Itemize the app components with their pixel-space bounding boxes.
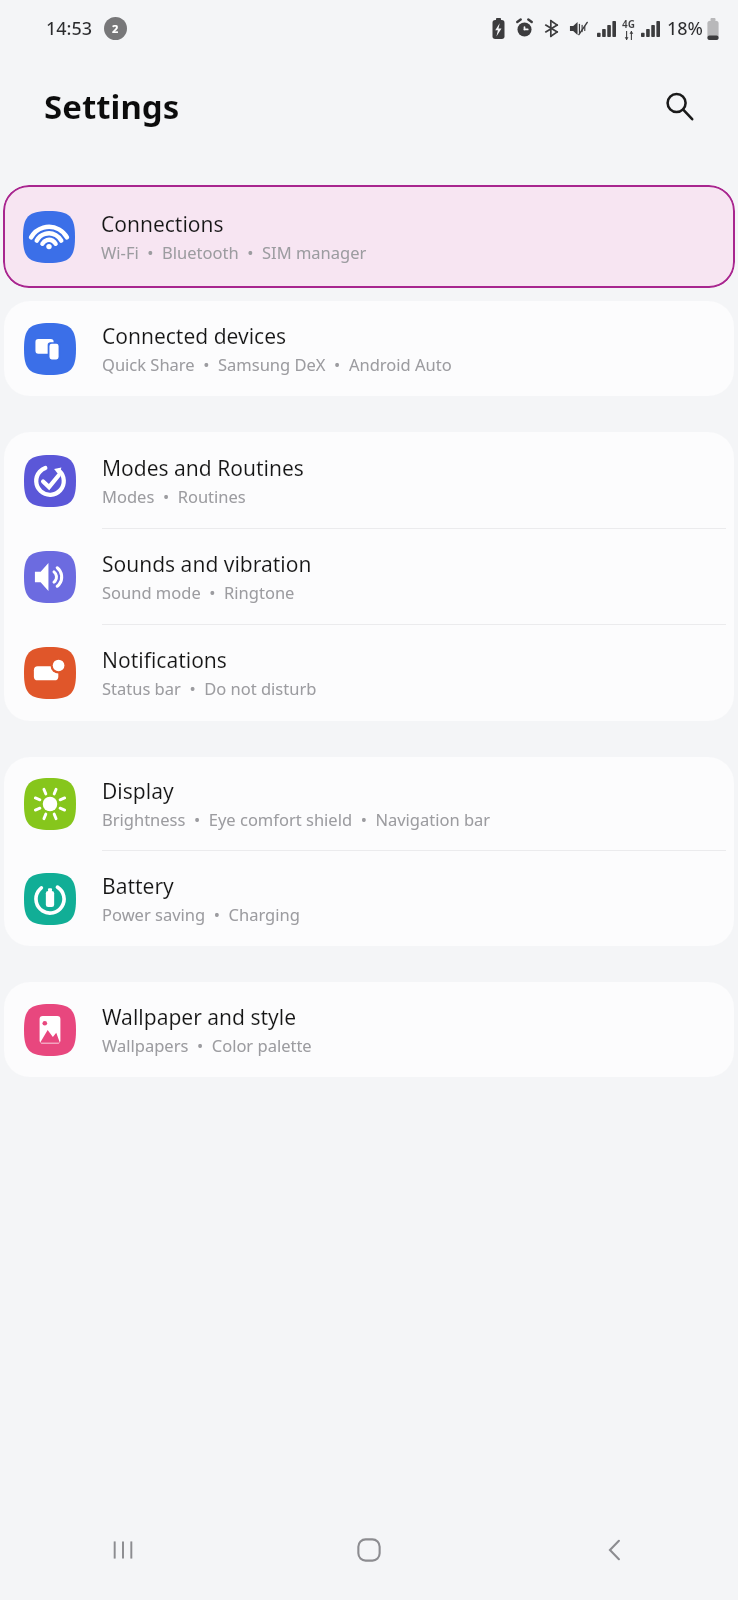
staticText: Modes and Routines <box>102 454 304 483</box>
button[interactable]: Recent apps <box>0 1500 246 1600</box>
staticText: Brightness • Eye comfort shield • Naviga… <box>102 808 491 830</box>
staticText: 4G <box>622 17 635 31</box>
staticText: Connections <box>101 210 224 239</box>
staticText: Quick Share • Samsung DeX • Android Auto <box>102 353 452 375</box>
button[interactable]: Notifications <box>4 625 734 721</box>
staticText: Connected devices <box>102 322 287 351</box>
staticText: Sound mode • Ringtone <box>102 581 295 603</box>
staticText: Modes • Routines <box>102 485 246 507</box>
button[interactable]: Connections <box>3 185 735 288</box>
staticText: 14:53 <box>46 16 93 41</box>
staticText: Display <box>102 777 174 806</box>
staticText: 2 <box>112 21 119 36</box>
staticText: Status bar • Do not disturb <box>102 677 317 699</box>
staticText: 18% <box>667 16 703 41</box>
staticText: Sounds and vibration <box>102 550 312 579</box>
staticText: Battery <box>102 872 174 901</box>
staticText: Wi-Fi • Bluetooth • SIM manager <box>101 241 367 263</box>
button[interactable]: Battery <box>4 851 734 946</box>
button[interactable]: Back <box>492 1500 738 1600</box>
button[interactable]: Home <box>246 1500 492 1600</box>
button[interactable]: Display <box>4 757 734 850</box>
button[interactable]: Wallpaper and style <box>4 982 734 1077</box>
staticText: Settings <box>44 84 180 129</box>
button[interactable]: Search <box>656 83 702 129</box>
staticText: Wallpaper and style <box>102 1003 297 1032</box>
button[interactable]: Connected devices <box>4 301 734 396</box>
button[interactable]: Sounds and vibration <box>4 529 734 624</box>
staticText: Notifications <box>102 646 227 675</box>
staticText: Wallpapers • Color palette <box>102 1034 312 1056</box>
button[interactable]: Modes and Routines <box>4 432 734 528</box>
staticText: Power saving • Charging <box>102 903 300 925</box>
